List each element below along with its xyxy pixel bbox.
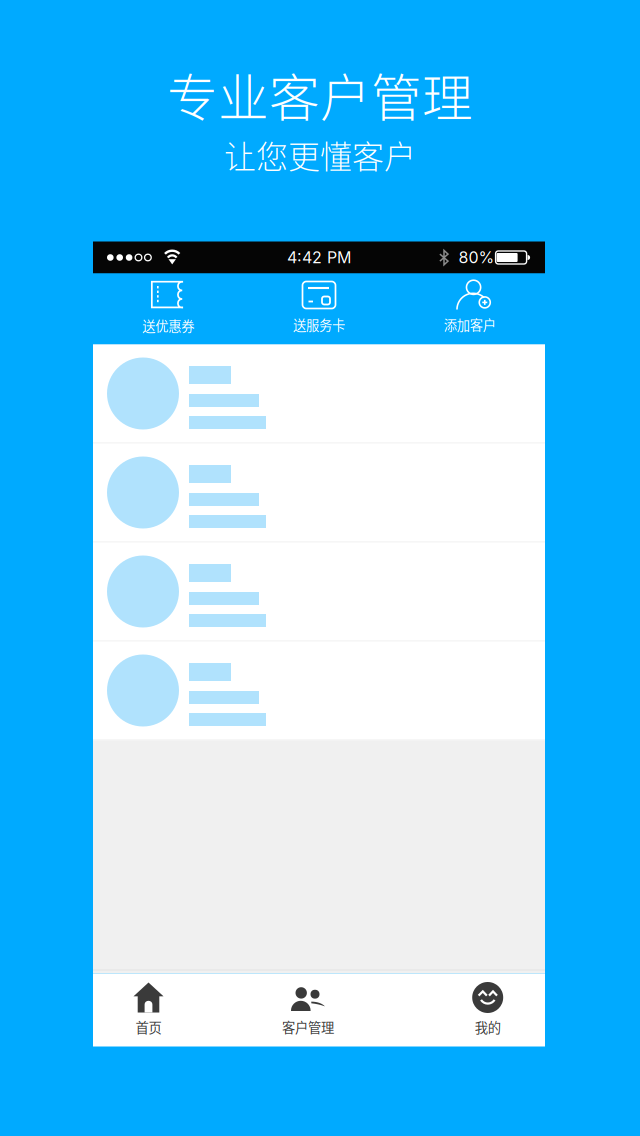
button[interactable] (93, 542, 545, 641)
button[interactable]: 送服务卡 (244, 273, 394, 344)
staticText: 专业客户管理 (167, 58, 473, 131)
staticText: 客户管理 (282, 1017, 334, 1037)
button[interactable]: 我的 (452, 970, 523, 1042)
staticText: 让您更懂客户 (224, 131, 416, 178)
button[interactable]: 添加客户 (394, 273, 545, 344)
button[interactable] (93, 344, 545, 443)
staticText: 首页 (135, 1017, 161, 1037)
staticText: 添加客户 (444, 315, 496, 334)
button[interactable]: 客户管理 (272, 970, 343, 1042)
button[interactable] (93, 641, 545, 740)
button[interactable] (93, 443, 545, 542)
button[interactable]: 送优惠券 (93, 273, 244, 344)
button[interactable]: 首页 (113, 970, 184, 1042)
staticText: 送服务卡 (293, 315, 345, 334)
staticText: 80% (459, 248, 495, 267)
staticText: 4:42 PM (287, 248, 351, 267)
staticText: 我的 (475, 1017, 501, 1037)
staticText: 送优惠券 (142, 316, 194, 335)
